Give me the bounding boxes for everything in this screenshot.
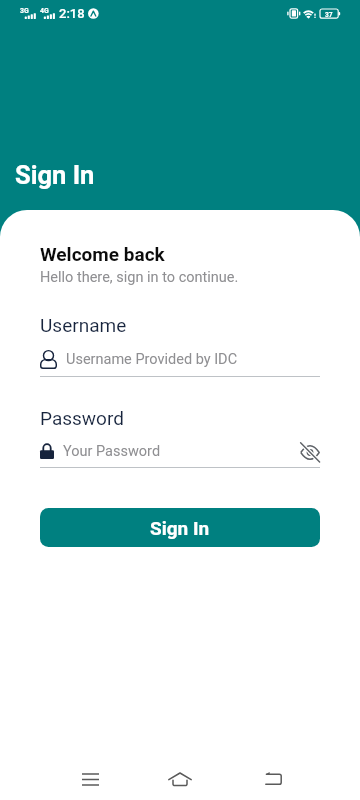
button[interactable]: Back [246, 760, 302, 798]
staticText: Sign In [150, 517, 210, 539]
staticText: 37 [325, 11, 333, 19]
staticText: Password [40, 407, 124, 429]
staticText: 3G [20, 7, 29, 15]
staticText: 2:18 [59, 6, 85, 21]
button[interactable]: Username Provided by IDC [40, 343, 320, 376]
button[interactable]: Recent apps [62, 760, 118, 798]
staticText: Username [40, 314, 127, 336]
button[interactable]: Home [152, 760, 208, 798]
staticText: Welcome back [40, 243, 165, 265]
button[interactable]: Sign In [40, 508, 320, 547]
staticText: 4G [40, 7, 49, 15]
button[interactable]: Show password [298, 440, 322, 464]
staticText: Hello there, sign in to continue. [40, 269, 239, 286]
staticText: Username Provided by IDC [66, 351, 238, 368]
staticText: Your Password [63, 443, 296, 460]
staticText: Sign In [15, 160, 95, 190]
button[interactable]: Your Password [40, 436, 320, 467]
